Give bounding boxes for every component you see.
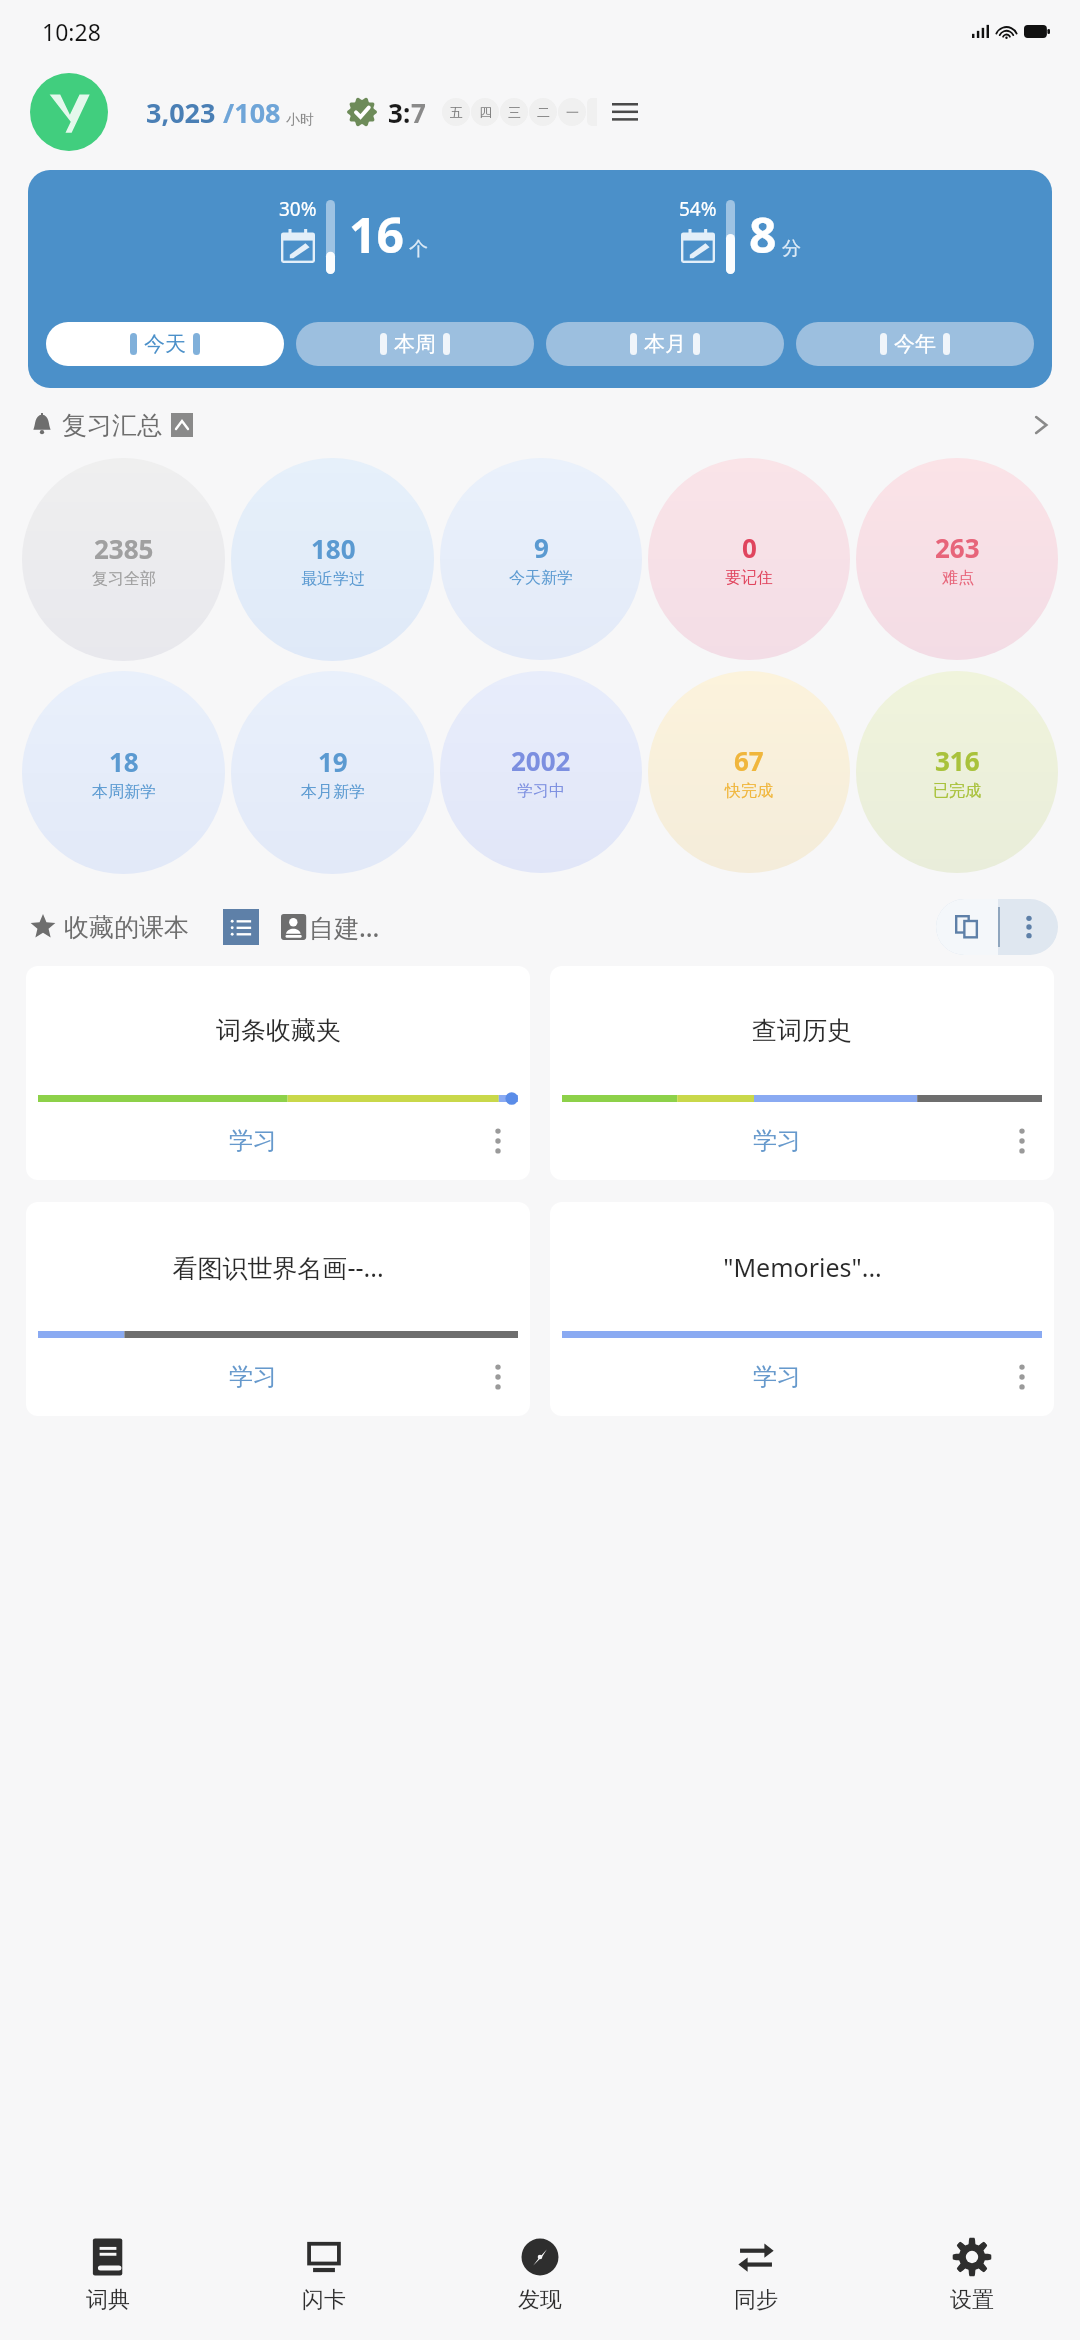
button[interactable]: 学习 <box>745 1354 809 1400</box>
button[interactable]: 四 <box>471 98 499 126</box>
staticText: 2385 <box>94 531 154 566</box>
button[interactable]: 今天 <box>46 322 284 366</box>
button[interactable]: 设置 <box>864 2210 1080 2340</box>
button[interactable]: 学习 <box>221 1118 285 1164</box>
staticText: 学习 <box>753 1362 801 1392</box>
staticText: 54% <box>679 196 717 222</box>
button[interactable]: 2002 <box>440 671 642 873</box>
button[interactable]: 今年 <box>796 322 1034 366</box>
staticText: 词典 <box>86 2286 130 2314</box>
button[interactable]: List view <box>223 909 259 945</box>
staticText: 今天新学 <box>509 568 573 588</box>
button[interactable]: 学习 <box>221 1354 285 1400</box>
staticText: 词条收藏夹 <box>216 1015 341 1046</box>
button[interactable]: "Memories"... <box>550 1202 1054 1416</box>
button[interactable]: 2385 <box>22 458 225 661</box>
staticText: 分 <box>782 237 801 261</box>
staticText: 今天 <box>144 331 186 357</box>
button[interactable]: 263 <box>856 458 1058 660</box>
staticText: : <box>403 95 411 130</box>
staticText: 难点 <box>942 568 974 588</box>
staticText: 五 <box>450 104 463 120</box>
button[interactable]: 一 <box>558 98 586 126</box>
button[interactable]: 词条收藏夹 <box>26 966 530 1180</box>
button[interactable]: 五 <box>442 98 470 126</box>
staticText: 学习 <box>753 1126 801 1156</box>
staticText: 同步 <box>734 2286 778 2314</box>
staticText: 学习 <box>229 1126 277 1156</box>
staticText: 发现 <box>518 2286 562 2314</box>
staticText: 本月新学 <box>301 782 365 802</box>
button[interactable]: 0 <box>648 458 850 660</box>
staticText: 设置 <box>950 2286 994 2314</box>
button[interactable]: 二 <box>529 98 557 126</box>
staticText: 复习汇总 <box>62 410 162 441</box>
staticText: 180 <box>311 531 356 566</box>
button[interactable]: 19 <box>231 671 434 874</box>
staticText: 263 <box>935 530 980 565</box>
staticText: 2002 <box>511 743 571 778</box>
staticText: 三 <box>508 104 521 120</box>
staticText: 18 <box>109 744 139 779</box>
staticText: 本周 <box>394 331 436 357</box>
staticText: 3,023 <box>146 94 216 131</box>
button[interactable]: 18 <box>22 671 225 874</box>
staticText: 316 <box>935 743 980 778</box>
staticText: 今年 <box>894 331 936 357</box>
button[interactable]: More <box>1000 1119 1044 1163</box>
button[interactable]: 本周 <box>296 322 534 366</box>
staticText: 收藏的课本 <box>64 912 189 943</box>
button[interactable]: 发现 <box>432 2210 648 2340</box>
staticText: 16 <box>349 202 404 267</box>
staticText: 19 <box>318 744 348 779</box>
staticText: 67 <box>734 743 764 778</box>
staticText: 3 <box>388 95 403 130</box>
button[interactable]: 查词历史 <box>550 966 1054 1180</box>
staticText: 个 <box>409 237 428 261</box>
staticText: 闪卡 <box>302 2286 346 2314</box>
staticText: "Memories"... <box>723 1250 882 1284</box>
staticText: 9 <box>534 530 549 565</box>
staticText: 查词历史 <box>752 1015 852 1046</box>
staticText: 本周新学 <box>92 782 156 802</box>
staticText: 快完成 <box>725 781 773 801</box>
button[interactable]: 三 <box>500 98 528 126</box>
staticText: 二 <box>537 104 550 120</box>
button[interactable]: 学习 <box>745 1118 809 1164</box>
staticText: 7 <box>411 95 426 130</box>
button[interactable]: 自建... <box>281 910 380 944</box>
staticText: 0 <box>742 530 757 565</box>
button[interactable]: 本月 <box>546 322 784 366</box>
button[interactable]: 看图识世界名画--... <box>26 1202 530 1416</box>
button[interactable]: 316 <box>856 671 1058 873</box>
staticText: 本月 <box>644 331 686 357</box>
staticText: 学习中 <box>517 781 565 801</box>
button[interactable]: More options <box>1000 899 1058 955</box>
staticText: 四 <box>479 104 492 120</box>
staticText: 自建... <box>309 910 380 944</box>
staticText: 学习 <box>229 1362 277 1392</box>
button[interactable]: Menu <box>605 92 645 132</box>
button[interactable]: More <box>476 1119 520 1163</box>
button[interactable]: More <box>476 1355 520 1399</box>
button[interactable]: 词典 <box>0 2210 216 2340</box>
staticText: 要记住 <box>725 568 773 588</box>
staticText: 最近学过 <box>301 569 365 589</box>
button[interactable]: 闪卡 <box>216 2210 432 2340</box>
staticText: 30% <box>279 196 317 222</box>
button[interactable]: 复习汇总 <box>30 398 1052 452</box>
button[interactable]: Copy <box>936 899 998 955</box>
button[interactable]: 67 <box>648 671 850 873</box>
button[interactable]: 9 <box>440 458 642 660</box>
staticText: 8 <box>749 202 777 267</box>
button[interactable]: Profile <box>30 73 108 151</box>
button[interactable]: More <box>1000 1355 1044 1399</box>
staticText: 看图识世界名画--... <box>172 1250 384 1284</box>
staticText: /108 <box>216 94 281 131</box>
staticText: 一 <box>566 104 579 120</box>
staticText: 已完成 <box>933 781 981 801</box>
button[interactable]: 180 <box>231 458 434 661</box>
button[interactable]: 同步 <box>648 2210 864 2340</box>
staticText: 复习全部 <box>92 569 156 589</box>
staticText: 10:28 <box>42 16 101 47</box>
